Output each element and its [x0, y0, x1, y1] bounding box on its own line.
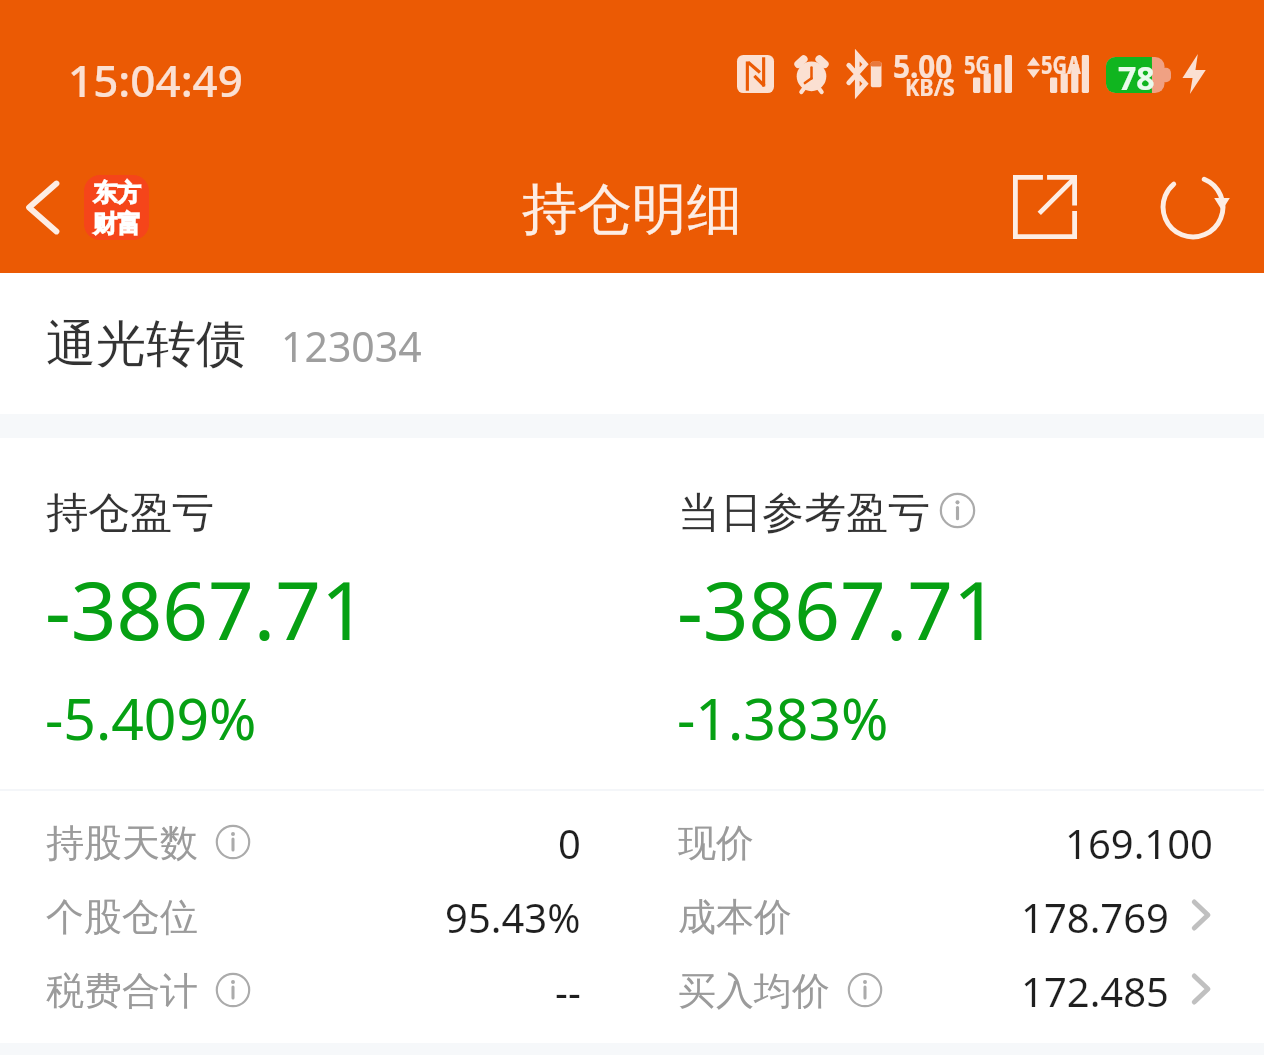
- staticText: 123034: [281, 318, 422, 374]
- staticText: 现价: [678, 819, 754, 867]
- staticText: 178.769: [1021, 890, 1169, 944]
- staticText: KB/S: [905, 70, 955, 103]
- staticText: 税费合计: [46, 967, 198, 1015]
- button[interactable]: 个股仓位: [0, 890, 632, 944]
- staticText: 5G: [964, 47, 990, 81]
- staticText: 通光转债: [46, 313, 246, 376]
- button[interactable]: 现价: [632, 816, 1264, 870]
- staticText: 当日参考盈亏: [678, 487, 930, 540]
- staticText: 5GA: [1041, 47, 1081, 81]
- staticText: -5.409%: [45, 679, 257, 757]
- staticText: -3867.71: [677, 554, 999, 663]
- staticText: -1.383%: [677, 679, 889, 757]
- staticText: 财富: [93, 209, 141, 239]
- button[interactable]: 税费合计: [0, 964, 632, 1018]
- staticText: --: [555, 964, 581, 1018]
- staticText: 个股仓位: [46, 893, 198, 941]
- button[interactable]: 持股天数: [0, 816, 632, 870]
- staticText: 169.100: [1065, 816, 1213, 870]
- button[interactable]: Back: [9, 166, 163, 248]
- button[interactable]: 成本价: [632, 890, 1264, 944]
- staticText: 5.00: [893, 43, 952, 88]
- staticText: 买入均价: [678, 967, 830, 1015]
- staticText: 持仓明细: [522, 175, 742, 244]
- staticText: 172.485: [1021, 964, 1169, 1018]
- button[interactable]: Refresh: [1153, 167, 1233, 247]
- staticText: 15:04:49: [68, 50, 243, 110]
- staticText: 持股天数: [46, 819, 198, 867]
- staticText: 95.43%: [445, 890, 581, 944]
- staticText: 持仓盈亏: [46, 487, 214, 540]
- staticText: 东方: [93, 178, 141, 208]
- staticText: 0: [558, 816, 581, 870]
- staticText: 78: [1118, 56, 1155, 92]
- button[interactable]: Share: [1005, 167, 1085, 247]
- staticText: -3867.71: [45, 554, 367, 663]
- button[interactable]: 买入均价: [632, 964, 1264, 1018]
- staticText: 成本价: [678, 893, 792, 941]
